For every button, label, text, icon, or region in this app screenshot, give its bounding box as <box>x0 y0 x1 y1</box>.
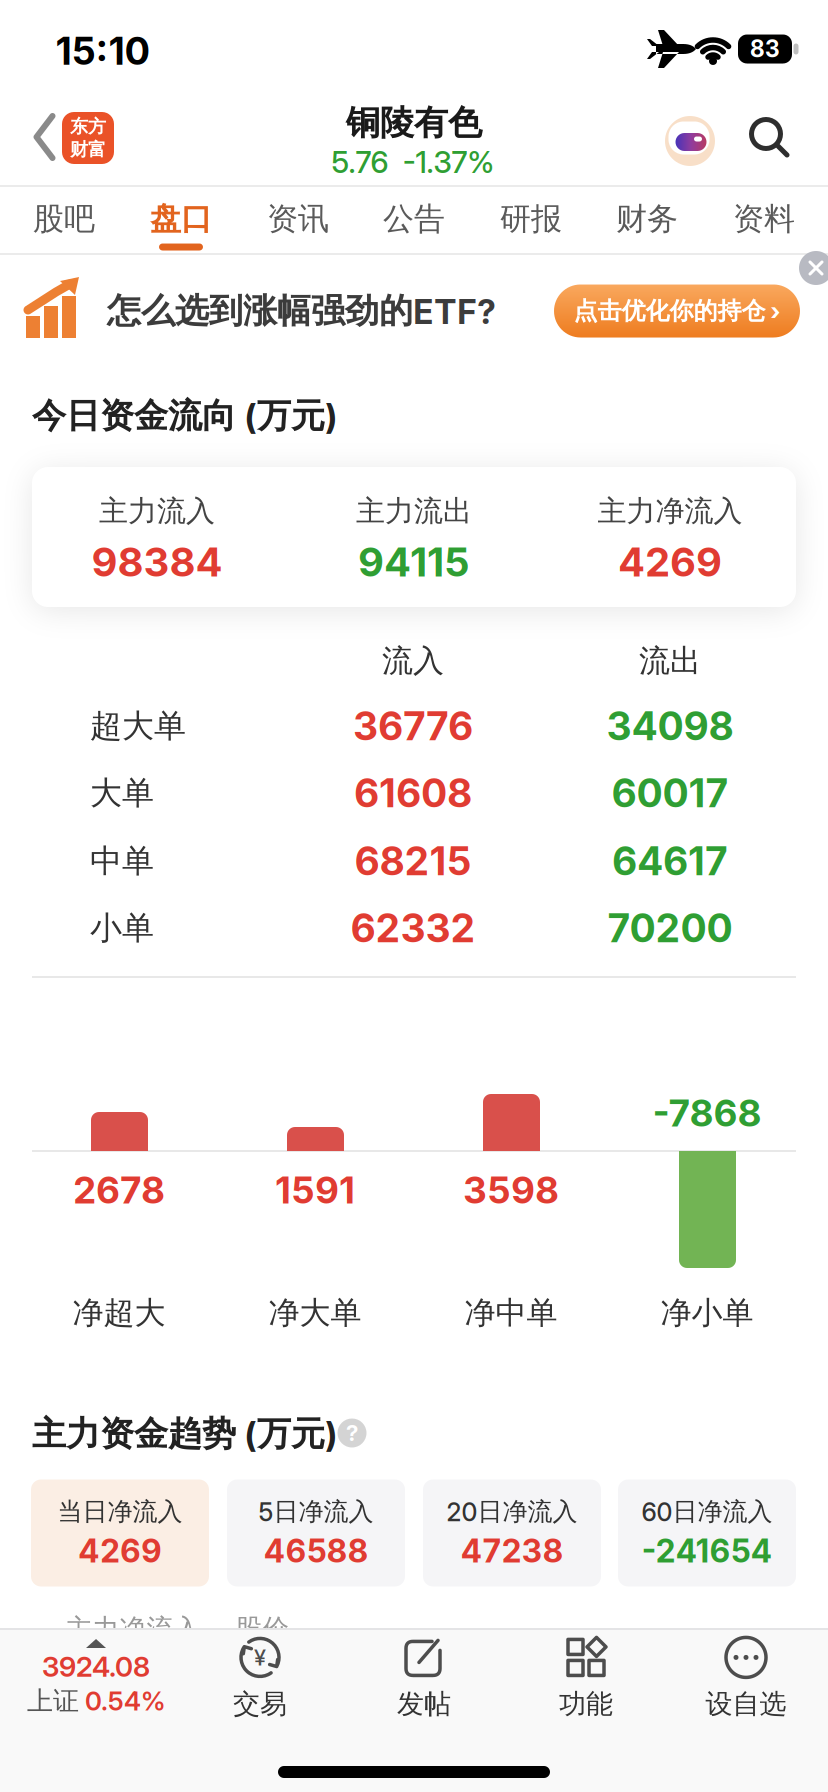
button[interactable]: 公告 <box>359 189 469 249</box>
staticText: 财富 <box>70 138 106 161</box>
button[interactable]: 20日净流入 <box>423 1479 601 1586</box>
button[interactable]: 财务 <box>592 189 702 249</box>
button[interactable]: Back <box>32 112 57 162</box>
staticText: 发帖 <box>397 1687 451 1721</box>
button[interactable]: 点击优化你的持仓 › <box>554 284 800 337</box>
staticText: 小单 <box>90 908 154 948</box>
staticText: 当日净流入 <box>57 1496 182 1527</box>
staticText: 研报 <box>500 200 562 238</box>
staticText: 股吧 <box>33 200 95 238</box>
staticText: 净中单 <box>464 1294 557 1332</box>
staticText: 62332 <box>350 905 475 951</box>
staticText: 中单 <box>90 841 154 881</box>
button[interactable]: 资料 <box>709 189 819 249</box>
staticText: 主力流入 <box>99 493 215 529</box>
staticText: 净超大 <box>72 1294 165 1332</box>
staticText: 64617 <box>612 838 728 884</box>
button[interactable]: 3924.08 <box>1 1623 191 1733</box>
staticText: 1591 <box>275 1168 355 1212</box>
staticText: 设自选 <box>705 1687 786 1721</box>
staticText: 主力资金趋势 (万元) <box>32 1413 338 1455</box>
button[interactable]: 发帖 <box>354 1626 494 1730</box>
staticText: 资料 <box>733 200 795 238</box>
staticText: ¥ <box>254 1644 266 1670</box>
staticText: 盘口 <box>150 200 212 238</box>
staticText: 83 <box>750 35 780 62</box>
staticText: 点击优化你的持仓 › <box>573 296 780 326</box>
staticText: 大单 <box>90 773 154 813</box>
staticText: 46588 <box>263 1532 368 1570</box>
staticText: 净大单 <box>268 1294 361 1332</box>
staticText: 15:10 <box>55 29 150 73</box>
staticText: 东方 <box>70 115 106 137</box>
staticText: 股价 <box>235 1612 289 1646</box>
button[interactable]: 盘口 <box>126 189 236 249</box>
staticText: 流出 <box>639 642 701 680</box>
button[interactable]: 资讯 <box>243 189 353 249</box>
staticText: 怎么选到涨幅强劲的ETF? <box>107 290 496 332</box>
staticText: 60017 <box>611 770 728 816</box>
staticText: 0.54% <box>85 1686 165 1716</box>
staticText: 5日净流入 <box>258 1496 373 1527</box>
staticText: 3924.08 <box>42 1650 150 1683</box>
button[interactable]: 60日净流入 <box>618 1479 796 1586</box>
staticText: 70200 <box>607 905 732 951</box>
button[interactable]: AI assistant <box>665 116 715 166</box>
staticText: 5.76 -1.37% <box>331 144 494 180</box>
staticText: 4269 <box>618 538 722 586</box>
staticText: 交易 <box>233 1687 287 1721</box>
staticText: 68215 <box>354 838 471 884</box>
button[interactable]: 5日净流入 <box>227 1479 405 1586</box>
staticText: 36776 <box>353 703 473 749</box>
staticText: 铜陵有色 <box>346 102 482 144</box>
button[interactable]: 功能 <box>516 1626 656 1730</box>
staticText: 今日资金流向 (万元) <box>32 395 338 437</box>
staticText: 94115 <box>358 538 470 586</box>
button[interactable]: Search <box>751 119 791 159</box>
button[interactable]: 当日净流入 <box>31 1479 209 1586</box>
staticText: ? <box>346 1420 358 1446</box>
staticText: 资讯 <box>267 200 329 238</box>
staticText: 4269 <box>78 1532 162 1570</box>
staticText: 主力净流入 <box>597 493 742 529</box>
staticText: 超大单 <box>90 706 186 746</box>
staticText: 34098 <box>606 703 733 749</box>
button[interactable]: 研报 <box>476 189 586 249</box>
staticText: 财务 <box>616 200 678 238</box>
button[interactable]: Close banner <box>799 251 828 285</box>
button[interactable]: ¥ <box>190 1626 330 1730</box>
staticText: 上证 <box>27 1685 79 1717</box>
staticText: 20日净流入 <box>446 1496 577 1527</box>
staticText: 流入 <box>382 642 444 680</box>
staticText: 61608 <box>354 770 472 816</box>
staticText: 净小单 <box>660 1294 753 1332</box>
staticText: 98384 <box>91 538 222 586</box>
button[interactable]: 设自选 <box>676 1626 816 1730</box>
staticText: 60日净流入 <box>641 1496 772 1527</box>
staticText: -241654 <box>641 1532 772 1570</box>
staticText: 47238 <box>460 1532 563 1570</box>
staticText: 主力净流入 <box>65 1612 200 1646</box>
button[interactable]: 股吧 <box>9 189 119 249</box>
button[interactable]: 东方财富 <box>62 112 114 164</box>
staticText: 2678 <box>73 1168 165 1212</box>
staticText: 3598 <box>463 1168 559 1212</box>
staticText: -7868 <box>652 1091 761 1135</box>
staticText: 公告 <box>383 200 445 238</box>
staticText: 功能 <box>559 1687 613 1721</box>
staticText: 主力流出 <box>356 493 472 529</box>
